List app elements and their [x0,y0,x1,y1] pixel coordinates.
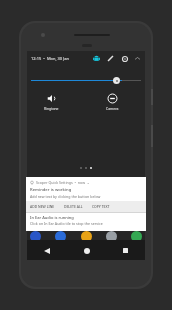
button[interactable]: Back [41,245,52,256]
button[interactable] [30,231,41,242]
button[interactable]: In Ear Audio is running [26,213,146,231]
button[interactable]: Camera [94,91,130,112]
staticText: Scoper Quick Settings • now ⌄ [36,180,90,185]
button[interactable] [106,231,117,242]
button[interactable]: COPY TEXT [92,203,110,210]
button[interactable] [131,231,142,242]
button[interactable]: ADD NEW LINE [30,203,55,210]
staticText: Add new text by clicking the button belo… [30,194,101,199]
staticText: Reminder is working [30,187,72,193]
staticText: Camera [106,106,119,111]
button[interactable]: Brightness [113,77,120,84]
staticText: COPY TEXT [92,204,110,209]
button[interactable]: DELETE ALL [64,203,83,210]
button[interactable]: Home [81,245,92,256]
staticText: ADD NEW LINE [30,204,55,209]
button[interactable]: Scoper Quick Settings • now ⌄ [26,177,146,201]
button[interactable] [55,231,66,242]
staticText: In Ear Audio is running [30,215,74,220]
button[interactable]: Edit [106,54,115,63]
button[interactable]: Settings [120,54,129,63]
staticText: Click on In Ear Audio tile to stop the s… [30,221,103,226]
button[interactable]: Android app [92,54,101,63]
staticText: 12:15 • Mon, 30 Jan [31,56,69,61]
button[interactable]: Collapse [133,54,141,62]
button[interactable] [81,231,92,242]
staticText: DELETE ALL [64,204,83,209]
button[interactable]: Ringtone [33,91,69,112]
staticText: Ringtone [44,106,59,111]
button[interactable]: Recents [120,245,131,256]
